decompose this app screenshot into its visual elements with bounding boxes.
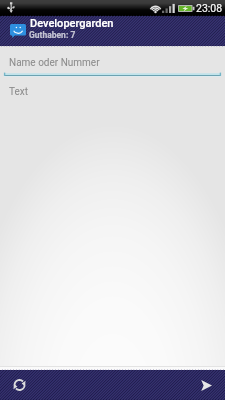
button[interactable]: Send bbox=[180, 370, 225, 400]
button[interactable]: App icon bbox=[0, 16, 225, 46]
button[interactable]: Text bbox=[0, 82, 225, 112]
button[interactable]: Refresh bbox=[0, 370, 45, 400]
other: App icon bbox=[10, 24, 26, 38]
button[interactable]: Name oder Nummer bbox=[0, 50, 225, 77]
staticText: Guthaben: 7 bbox=[29, 30, 76, 40]
staticText: Developergarden bbox=[30, 17, 114, 30]
staticText: Text bbox=[9, 86, 29, 98]
staticText: Name oder Nummer bbox=[9, 57, 100, 69]
staticText: 23:08 bbox=[196, 2, 223, 14]
